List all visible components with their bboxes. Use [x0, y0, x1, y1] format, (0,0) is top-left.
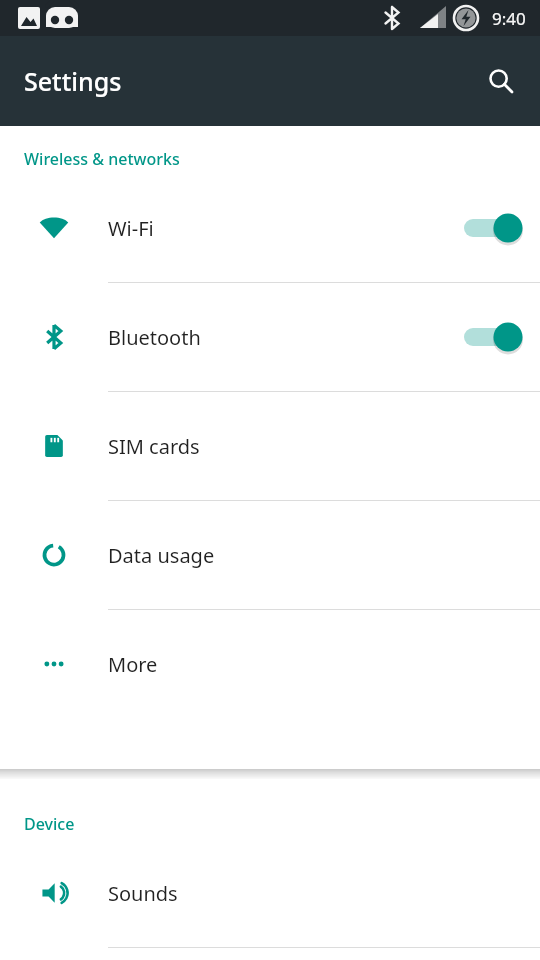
staticText: Wi-Fi	[108, 215, 440, 242]
button[interactable]: Wi-Fi toggle	[440, 198, 540, 258]
button[interactable]: Data usage	[0, 501, 540, 609]
button[interactable]: Bluetooth toggle	[440, 307, 540, 367]
staticText: Sounds	[108, 880, 516, 907]
staticText: 9:40	[492, 7, 526, 30]
staticText: Wireless & networks	[24, 148, 180, 170]
button[interactable]: Sounds	[0, 839, 540, 947]
staticText: SIM cards	[108, 433, 516, 460]
staticText: Data usage	[108, 542, 516, 569]
button[interactable]: More	[0, 610, 540, 718]
button[interactable]: Wi-Fi	[0, 174, 540, 282]
button[interactable]: Search	[475, 55, 527, 107]
staticText: More	[108, 651, 516, 678]
staticText: Device	[24, 813, 75, 835]
staticText: Settings	[24, 64, 122, 98]
button[interactable]: Bluetooth	[0, 283, 540, 391]
button[interactable]: SIM cards	[0, 392, 540, 500]
staticText: Bluetooth	[108, 324, 440, 351]
